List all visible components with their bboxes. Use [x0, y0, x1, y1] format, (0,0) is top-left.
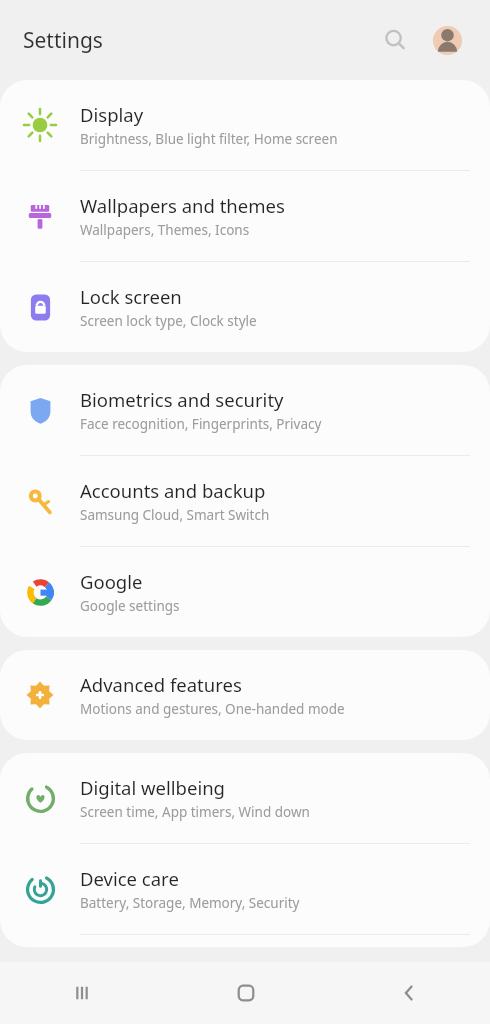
button[interactable]: Search	[372, 17, 418, 63]
staticText: Advanced features	[80, 672, 242, 697]
staticText: Face recognition, Fingerprints, Privacy	[80, 415, 322, 433]
staticText: Display	[80, 102, 144, 127]
staticText: Wallpapers and themes	[80, 193, 285, 218]
button[interactable]: Samsung account	[424, 17, 470, 63]
button[interactable]: Back	[327, 962, 490, 1024]
staticText: Screen time, App timers, Wind down	[80, 803, 310, 821]
staticText: Digital wellbeing	[80, 775, 225, 800]
button[interactable]: Display	[0, 80, 490, 170]
staticText: Samsung Cloud, Smart Switch	[80, 506, 270, 524]
staticText: Screen lock type, Clock style	[80, 312, 257, 330]
button[interactable]: Home	[164, 962, 327, 1024]
button[interactable]: Google	[0, 547, 490, 637]
button[interactable]: Digital wellbeing	[0, 753, 490, 843]
button[interactable]: Device care	[0, 844, 490, 934]
staticText: Google settings	[80, 597, 180, 615]
button[interactable]: Recent apps	[0, 962, 164, 1024]
staticText: Settings	[23, 26, 103, 55]
staticText: Lock screen	[80, 284, 182, 309]
staticText: Biometrics and security	[80, 387, 284, 412]
button[interactable]: Advanced features	[0, 650, 490, 740]
staticText: Battery, Storage, Memory, Security	[80, 894, 300, 912]
staticText: Motions and gestures, One-handed mode	[80, 700, 345, 718]
button[interactable]: Accounts and backup	[0, 456, 490, 546]
staticText: Brightness, Blue light filter, Home scre…	[80, 130, 338, 148]
staticText: Device care	[80, 866, 179, 891]
staticText: Accounts and backup	[80, 478, 266, 503]
staticText: Google	[80, 569, 143, 594]
staticText: Wallpapers, Themes, Icons	[80, 221, 250, 239]
button[interactable]: Lock screen	[0, 262, 490, 352]
button[interactable]: Wallpapers and themes	[0, 171, 490, 261]
button[interactable]: Biometrics and security	[0, 365, 490, 455]
